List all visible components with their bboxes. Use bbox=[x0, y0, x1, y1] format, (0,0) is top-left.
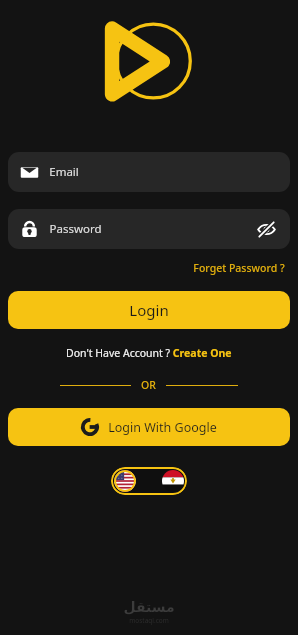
button[interactable]: Don't Have Account ? Create One bbox=[62, 344, 236, 362]
staticText: Forget Password ? bbox=[193, 261, 285, 275]
button[interactable]: Email bbox=[8, 152, 290, 192]
staticText: OR bbox=[141, 378, 156, 392]
button[interactable]: Change language bbox=[111, 467, 187, 495]
button[interactable]: Password bbox=[8, 209, 290, 249]
button[interactable]: Forget Password ? bbox=[188, 258, 290, 278]
staticText: Login bbox=[129, 300, 169, 320]
staticText: مستقل bbox=[123, 599, 175, 615]
staticText: Password bbox=[49, 221, 102, 237]
staticText: Email bbox=[49, 164, 79, 180]
staticText: mostaql.com bbox=[129, 616, 169, 625]
staticText: Don't Have Account ? Create One bbox=[66, 346, 232, 360]
button[interactable]: Login With Google bbox=[8, 408, 290, 446]
button[interactable]: Login bbox=[8, 291, 290, 329]
button[interactable]: Toggle password visibility bbox=[254, 217, 278, 241]
staticText: Login With Google bbox=[108, 419, 217, 436]
